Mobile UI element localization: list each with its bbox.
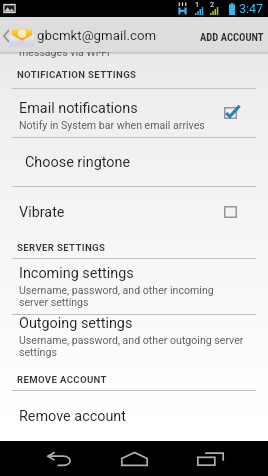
staticText: gbcmkt@gmail.com xyxy=(37,28,157,44)
staticText: SERVER SETTINGS xyxy=(17,242,106,253)
staticText: Outgoing settings xyxy=(19,315,133,332)
staticText: REMOVE ACCOUNT xyxy=(17,374,107,385)
staticText: Email notifications xyxy=(19,100,138,117)
button[interactable]: Remove account xyxy=(0,395,268,437)
staticText: Username, password, and other incoming s… xyxy=(19,284,214,308)
button[interactable]: Home xyxy=(102,441,166,476)
button[interactable]: Choose ringtone xyxy=(0,138,268,186)
staticText: ADD ACCOUNT xyxy=(200,31,264,43)
staticText: Choose ringtone xyxy=(25,154,131,171)
button[interactable]: Incoming settings xyxy=(0,265,268,308)
staticText: 2 xyxy=(210,1,214,9)
button[interactable]: Email notifications xyxy=(0,100,268,131)
staticText: Incoming settings xyxy=(19,265,134,282)
staticText: 1 xyxy=(195,1,199,9)
staticText: messages via Wi-Fi xyxy=(19,46,110,58)
staticText: Vibrate xyxy=(19,204,224,221)
button[interactable]: Recent apps xyxy=(178,441,242,476)
staticText: Remove account xyxy=(19,408,126,425)
button[interactable]: Navigate up xyxy=(0,17,170,52)
button[interactable]: Back xyxy=(28,441,91,476)
button[interactable]: ADD ACCOUNT xyxy=(188,17,268,52)
button[interactable]: Vibrate xyxy=(0,201,268,223)
staticText: 3:47 xyxy=(239,1,264,16)
button[interactable]: Outgoing settings xyxy=(0,315,268,358)
staticText: Notify in System bar when email arrives xyxy=(19,119,205,131)
staticText: NOTIFICATION SETTINGS xyxy=(17,69,137,80)
staticText: Username, password, and other outgoing s… xyxy=(19,334,244,358)
